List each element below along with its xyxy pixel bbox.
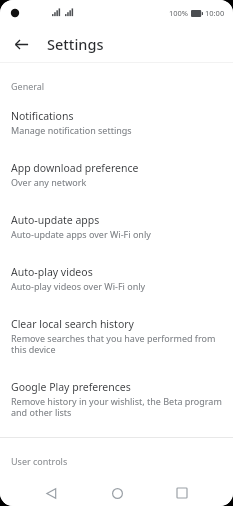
staticText: Notifications <box>11 109 74 123</box>
staticText: Auto-play videos <box>11 265 93 279</box>
staticText: Settings <box>47 34 104 54</box>
staticText: General <box>11 80 45 92</box>
button[interactable]: Recent apps <box>167 480 197 506</box>
button[interactable]: Back <box>36 480 66 506</box>
staticText: User controls <box>11 455 68 467</box>
staticText: Auto-update apps over Wi-Fi only <box>11 228 151 240</box>
button[interactable]: Auto-update apps <box>0 205 233 249</box>
staticText: Auto-play videos over Wi-Fi only <box>11 280 146 292</box>
staticText: Clear local search history <box>11 317 134 331</box>
button[interactable]: Google Play preferences <box>0 372 233 427</box>
staticText: Manage notification settings <box>11 124 132 136</box>
button[interactable]: Back <box>8 31 34 57</box>
staticText: Remove history in your wishlist, the Bet… <box>11 395 222 418</box>
button[interactable]: Clear local search history <box>0 309 233 364</box>
staticText: Remove searches that you have performed … <box>11 332 222 355</box>
staticText: 100% <box>169 8 189 18</box>
staticText: App download preference <box>11 161 139 175</box>
button[interactable]: Auto-play videos <box>0 257 233 301</box>
button[interactable]: Notifications <box>0 101 233 145</box>
button[interactable]: App download preference <box>0 153 233 197</box>
button[interactable]: Home <box>102 480 132 506</box>
staticText: Over any network <box>11 176 87 188</box>
staticText: 10:00 <box>205 8 225 18</box>
staticText: Auto-update apps <box>11 213 100 227</box>
staticText: Google Play preferences <box>11 380 131 394</box>
